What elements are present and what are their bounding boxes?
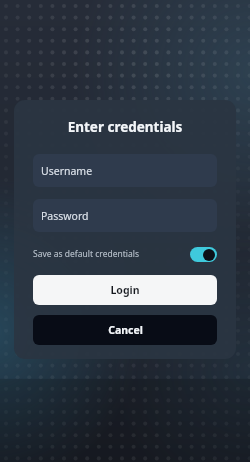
button[interactable]: Password <box>33 199 217 232</box>
button[interactable]: Login <box>33 275 217 305</box>
staticText: Login <box>110 283 140 297</box>
staticText: Password <box>41 209 89 223</box>
other: Save as default credentials toggle <box>190 247 217 262</box>
button[interactable]: Save as default credentials <box>33 245 217 263</box>
staticText: Cancel <box>108 323 143 337</box>
button[interactable]: Cancel <box>33 315 217 345</box>
button[interactable]: Username <box>33 154 217 187</box>
staticText: Enter credentials <box>14 118 236 136</box>
staticText: Username <box>41 164 93 178</box>
staticText: Save as default credentials <box>33 248 190 260</box>
